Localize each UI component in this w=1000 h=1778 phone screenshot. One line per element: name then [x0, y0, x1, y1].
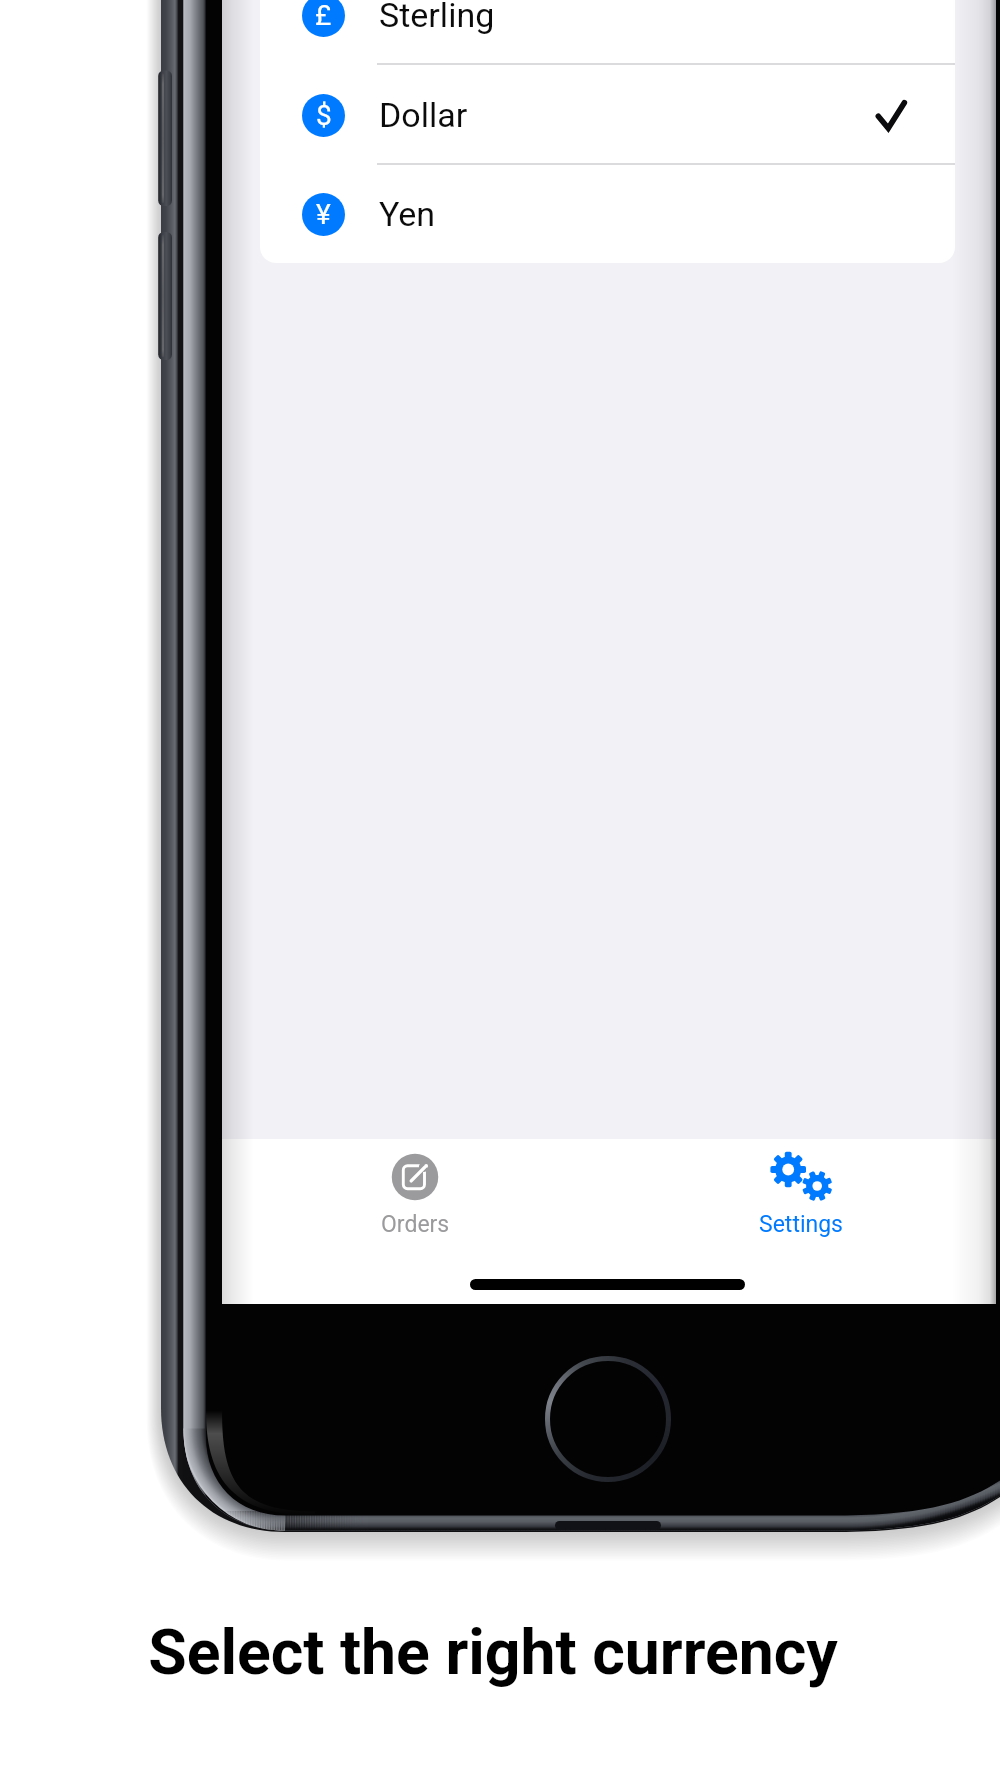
button[interactable]: Settings [608, 1139, 994, 1238]
staticText: £ [315, 0, 332, 32]
button[interactable]: ¥ [260, 165, 955, 263]
button[interactable]: £ [260, 0, 955, 65]
button[interactable]: $ [260, 65, 955, 165]
staticText: Orders [381, 1211, 450, 1238]
staticText: ¥ [316, 198, 331, 231]
staticText: Yen [379, 194, 436, 234]
staticText: $ [316, 99, 332, 132]
staticText: Sterling [379, 0, 495, 35]
staticText: Dollar [379, 95, 468, 135]
staticText: Settings [759, 1211, 843, 1238]
button[interactable]: Orders [222, 1139, 608, 1238]
staticText: Select the right currency [148, 1616, 838, 1689]
